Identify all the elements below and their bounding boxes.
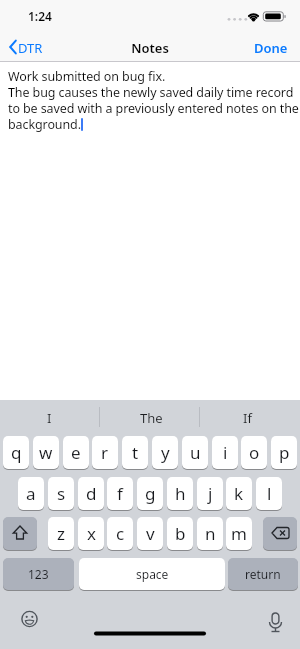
staticText: a bbox=[26, 482, 36, 505]
button[interactable]: l bbox=[256, 477, 282, 510]
staticText: q bbox=[11, 441, 22, 464]
button[interactable]: g bbox=[137, 477, 163, 510]
staticText: h bbox=[175, 482, 186, 505]
button[interactable]: The bbox=[102, 402, 201, 434]
button[interactable]: e bbox=[63, 436, 89, 469]
button[interactable]: DTR bbox=[8, 37, 52, 59]
staticText: w bbox=[39, 441, 53, 464]
staticText: l bbox=[267, 482, 272, 505]
button[interactable]: q bbox=[3, 436, 29, 469]
button[interactable]: space bbox=[79, 558, 225, 590]
button[interactable]: If bbox=[198, 402, 296, 434]
button[interactable]: c bbox=[107, 517, 133, 550]
staticText: k bbox=[234, 482, 244, 505]
button[interactable]: s bbox=[48, 477, 74, 510]
staticText: o bbox=[249, 441, 260, 464]
staticText: If bbox=[243, 409, 252, 427]
button[interactable]: p bbox=[271, 436, 297, 469]
button[interactable]: d bbox=[78, 477, 104, 510]
staticText: r bbox=[101, 441, 109, 464]
staticText: p bbox=[279, 441, 290, 464]
button[interactable]: m bbox=[226, 517, 252, 550]
button[interactable]: Done bbox=[250, 37, 290, 59]
staticText: g bbox=[145, 482, 156, 505]
button[interactable]: x bbox=[78, 517, 104, 550]
button[interactable]: I bbox=[0, 402, 99, 434]
staticText: d bbox=[86, 482, 97, 505]
button[interactable] bbox=[3, 517, 37, 550]
staticText: background. bbox=[8, 116, 81, 133]
staticText: z bbox=[57, 522, 65, 545]
staticText: return bbox=[245, 566, 281, 582]
staticText: m bbox=[231, 522, 247, 545]
staticText: y bbox=[161, 441, 170, 464]
staticText: j bbox=[208, 482, 213, 505]
staticText: The bbox=[140, 409, 163, 427]
staticText: f bbox=[117, 482, 123, 505]
button[interactable]: u bbox=[182, 436, 208, 469]
button[interactable]: 123 bbox=[3, 558, 74, 590]
staticText: v bbox=[146, 522, 155, 545]
staticText: The bug causes the newly saved daily tim… bbox=[8, 84, 294, 101]
staticText: u bbox=[190, 441, 201, 464]
staticText: space bbox=[136, 566, 169, 582]
button[interactable]: h bbox=[167, 477, 193, 510]
staticText: I bbox=[47, 409, 52, 427]
button[interactable]: y bbox=[152, 436, 178, 469]
staticText: 123 bbox=[28, 566, 49, 582]
staticText: Work submitted on bug fix. bbox=[8, 68, 166, 85]
staticText: n bbox=[205, 522, 216, 545]
staticText: e bbox=[71, 441, 81, 464]
button[interactable]: z bbox=[48, 517, 74, 550]
staticText: b bbox=[175, 522, 186, 545]
staticText: c bbox=[116, 522, 125, 545]
button[interactable]: o bbox=[241, 436, 267, 469]
button[interactable]: t bbox=[122, 436, 148, 469]
button[interactable]: w bbox=[33, 436, 59, 469]
staticText: Done bbox=[254, 39, 288, 57]
staticText: Notes bbox=[0, 39, 300, 57]
staticText: 1:24 bbox=[28, 8, 52, 24]
button[interactable] bbox=[263, 517, 297, 550]
staticText: DTR bbox=[18, 39, 43, 57]
button[interactable]: i bbox=[212, 436, 238, 469]
button[interactable]: k bbox=[226, 477, 252, 510]
button[interactable]: b bbox=[167, 517, 193, 550]
staticText: x bbox=[87, 522, 96, 545]
button[interactable]: f bbox=[107, 477, 133, 510]
button[interactable]: v bbox=[137, 517, 163, 550]
button[interactable]: j bbox=[197, 477, 223, 510]
staticText: t bbox=[132, 441, 139, 464]
staticText: i bbox=[223, 441, 228, 464]
button[interactable]: return bbox=[228, 558, 298, 590]
staticText: s bbox=[57, 482, 66, 505]
button[interactable]: a bbox=[18, 477, 44, 510]
button[interactable]: r bbox=[92, 436, 118, 469]
button[interactable]: n bbox=[197, 517, 223, 550]
staticText: to be saved with a previously entered no… bbox=[8, 100, 299, 117]
